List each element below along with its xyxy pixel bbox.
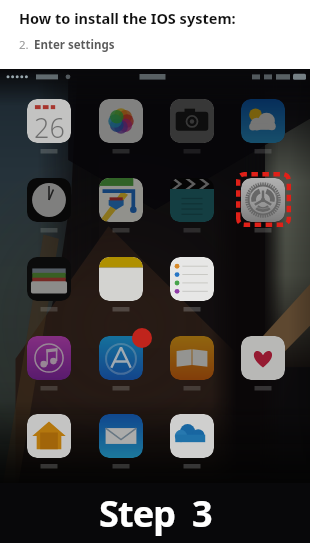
button[interactable]: Clock [27, 178, 71, 222]
button[interactable]: Calendar [27, 99, 71, 143]
staticText: How to install the IOS system: [19, 8, 236, 28]
button[interactable]: iTunes Store [27, 336, 71, 380]
staticText: 26 [34, 109, 65, 143]
button[interactable]: Reminders [170, 257, 214, 301]
button[interactable]: Videos [170, 178, 214, 222]
staticText: Enter settings [34, 37, 115, 53]
staticText: Step 3 [99, 489, 212, 538]
button[interactable]: App Store [99, 336, 143, 380]
button[interactable]: Photos [99, 99, 143, 143]
button[interactable]: Notes [99, 257, 143, 301]
button[interactable]: Maps [99, 178, 143, 222]
button[interactable]: iCloud Drive [170, 414, 214, 458]
button[interactable]: Home [27, 414, 71, 458]
button[interactable]: Mail [99, 414, 143, 458]
button[interactable]: Health [241, 336, 285, 380]
button[interactable]: Camera [170, 99, 214, 143]
button[interactable]: Weather [241, 99, 285, 143]
button[interactable]: Wallet [27, 257, 71, 301]
button[interactable]: Settings [241, 178, 285, 222]
button[interactable]: iBooks [170, 336, 214, 380]
staticText: 2. [19, 37, 29, 53]
